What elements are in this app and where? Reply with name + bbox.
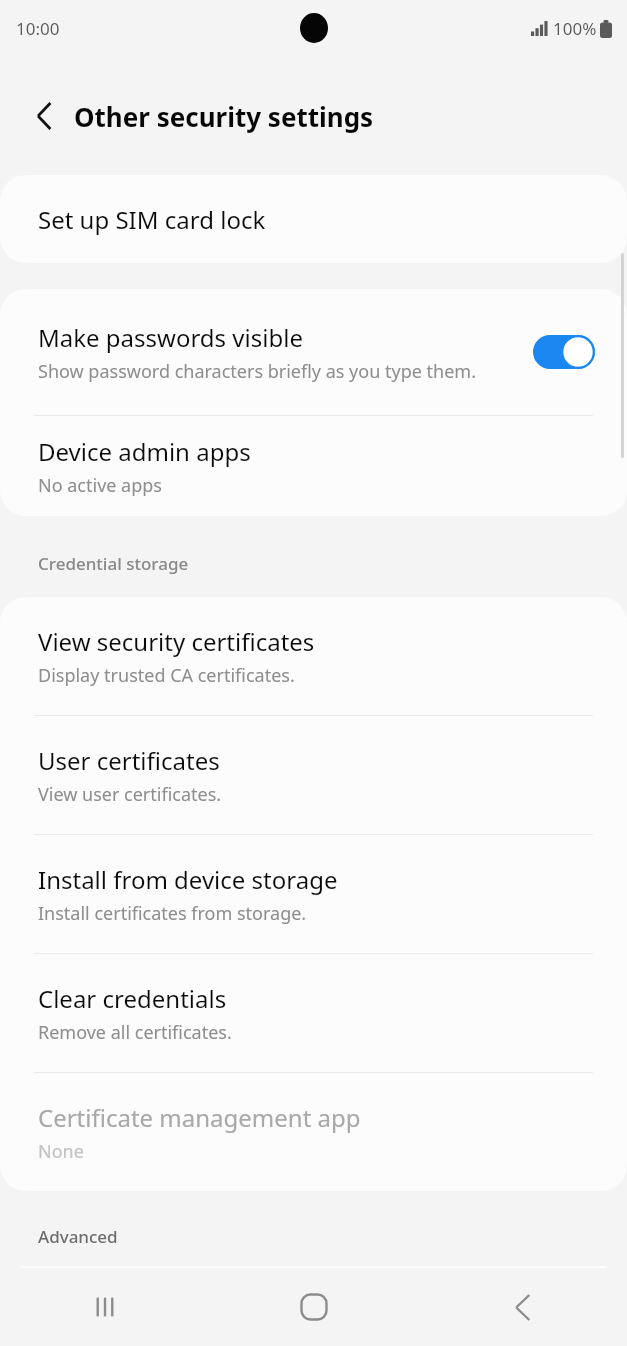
button[interactable]: Make passwords visible xyxy=(0,289,627,415)
button[interactable]: User certificates xyxy=(0,716,627,834)
staticText: Display trusted CA certificates. xyxy=(38,663,295,688)
staticText: Advanced xyxy=(38,1225,118,1248)
button[interactable]: View security certificates xyxy=(0,597,627,715)
staticText: Show password characters briefly as you … xyxy=(38,359,476,384)
staticText: User certificates xyxy=(38,744,220,777)
button[interactable]: Certificate management app xyxy=(0,1073,627,1191)
button[interactable]: Make passwords visible toggle xyxy=(531,332,597,372)
button[interactable]: Home xyxy=(209,1268,418,1346)
staticText: None xyxy=(38,1139,84,1164)
staticText: Other security settings xyxy=(74,99,374,134)
staticText: 100% xyxy=(553,17,597,40)
button[interactable]: Install from device storage xyxy=(0,835,627,953)
button[interactable]: Recent apps xyxy=(0,1268,209,1346)
staticText: Install certificates from storage. xyxy=(38,901,307,926)
button[interactable]: Set up SIM card lock xyxy=(0,175,627,263)
staticText: Device admin apps xyxy=(38,435,251,468)
button[interactable]: Back xyxy=(20,92,68,140)
staticText: No active apps xyxy=(38,473,162,498)
button[interactable]: Back xyxy=(418,1268,627,1346)
staticText: View user certificates. xyxy=(38,782,222,807)
button[interactable]: Device admin apps xyxy=(0,416,627,516)
staticText: 10:00 xyxy=(16,17,60,40)
staticText: View security certificates xyxy=(38,625,315,658)
staticText: Make passwords visible xyxy=(38,321,303,354)
staticText: Set up SIM card lock xyxy=(38,203,266,236)
staticText: Certificate management app xyxy=(38,1101,361,1134)
staticText: Credential storage xyxy=(38,552,189,575)
staticText: Clear credentials xyxy=(38,982,227,1015)
button[interactable]: Clear credentials xyxy=(0,954,627,1072)
staticText: Remove all certificates. xyxy=(38,1020,232,1045)
staticText: Install from device storage xyxy=(38,863,338,896)
